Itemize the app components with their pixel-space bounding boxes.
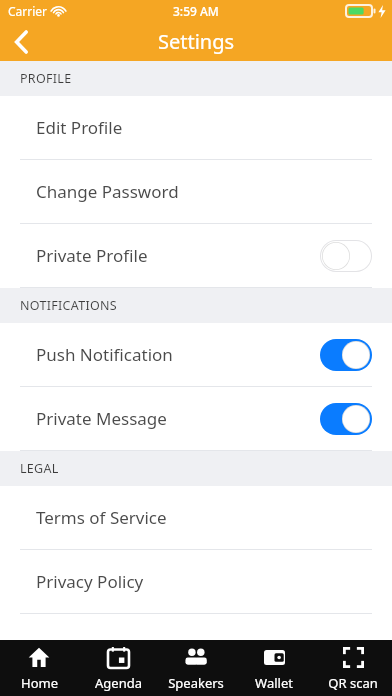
button[interactable]: Push Notification <box>0 323 392 386</box>
staticText: Home <box>21 674 58 692</box>
staticText: Carrier <box>8 3 48 19</box>
button[interactable]: Terms of Service <box>0 486 392 549</box>
button[interactable]: Speakers <box>157 640 235 696</box>
button[interactable]: Edit Profile <box>0 96 392 159</box>
button[interactable]: Wallet <box>235 640 313 696</box>
staticText: Wallet <box>255 674 293 692</box>
staticText: QR scan <box>328 674 378 692</box>
staticText: Push Notification <box>36 343 173 366</box>
staticText: Private Message <box>36 407 167 430</box>
staticText: NOTIFICATIONS <box>20 297 118 314</box>
button[interactable]: Back <box>0 22 44 61</box>
staticText: Speakers <box>168 674 224 692</box>
button[interactable]: Private Profile <box>0 224 392 287</box>
staticText: Privacy Policy <box>36 570 144 593</box>
staticText: LEGAL <box>20 460 59 477</box>
staticText: Agenda <box>95 674 142 692</box>
staticText: Settings <box>158 28 235 55</box>
staticText: Edit Profile <box>36 116 123 139</box>
staticText: Terms of Service <box>36 506 167 529</box>
staticText: PROFILE <box>20 70 72 87</box>
button[interactable]: Home <box>0 640 78 696</box>
button[interactable]: Change Password <box>0 160 392 223</box>
button[interactable]: On <box>320 403 372 435</box>
button[interactable]: Off <box>320 240 372 272</box>
button[interactable]: Private Message <box>0 387 392 450</box>
button[interactable]: Privacy Policy <box>0 550 392 613</box>
staticText: Change Password <box>36 180 179 203</box>
button[interactable]: Agenda <box>79 640 157 696</box>
staticText: Private Profile <box>36 244 148 267</box>
button[interactable]: QR scan <box>314 640 392 696</box>
staticText: 3:59 AM <box>173 3 219 19</box>
button[interactable]: On <box>320 339 372 371</box>
